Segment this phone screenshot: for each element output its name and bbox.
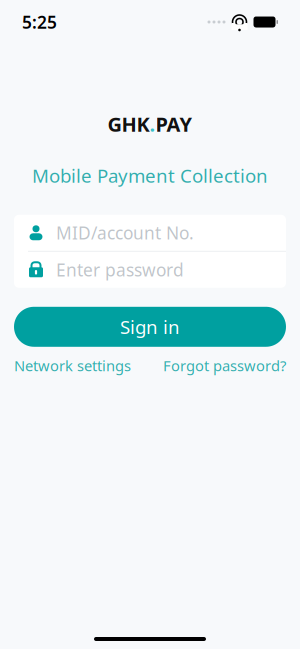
staticText: MID/account No.	[56, 221, 194, 244]
staticText: .	[149, 111, 155, 137]
button[interactable]: Network settings	[14, 356, 131, 375]
staticText: 5:25	[22, 10, 57, 33]
staticText: Mobile Payment Collection	[32, 163, 268, 188]
staticText: GHK	[107, 111, 149, 137]
staticText: Network settings	[14, 356, 131, 375]
staticText: Forgot password?	[163, 356, 286, 375]
staticText: PAY	[155, 111, 192, 137]
staticText: Sign in	[120, 314, 180, 339]
button[interactable]: Forgot password?	[163, 356, 286, 375]
staticText: Enter password	[56, 258, 184, 281]
button[interactable]: Sign in	[14, 307, 286, 347]
